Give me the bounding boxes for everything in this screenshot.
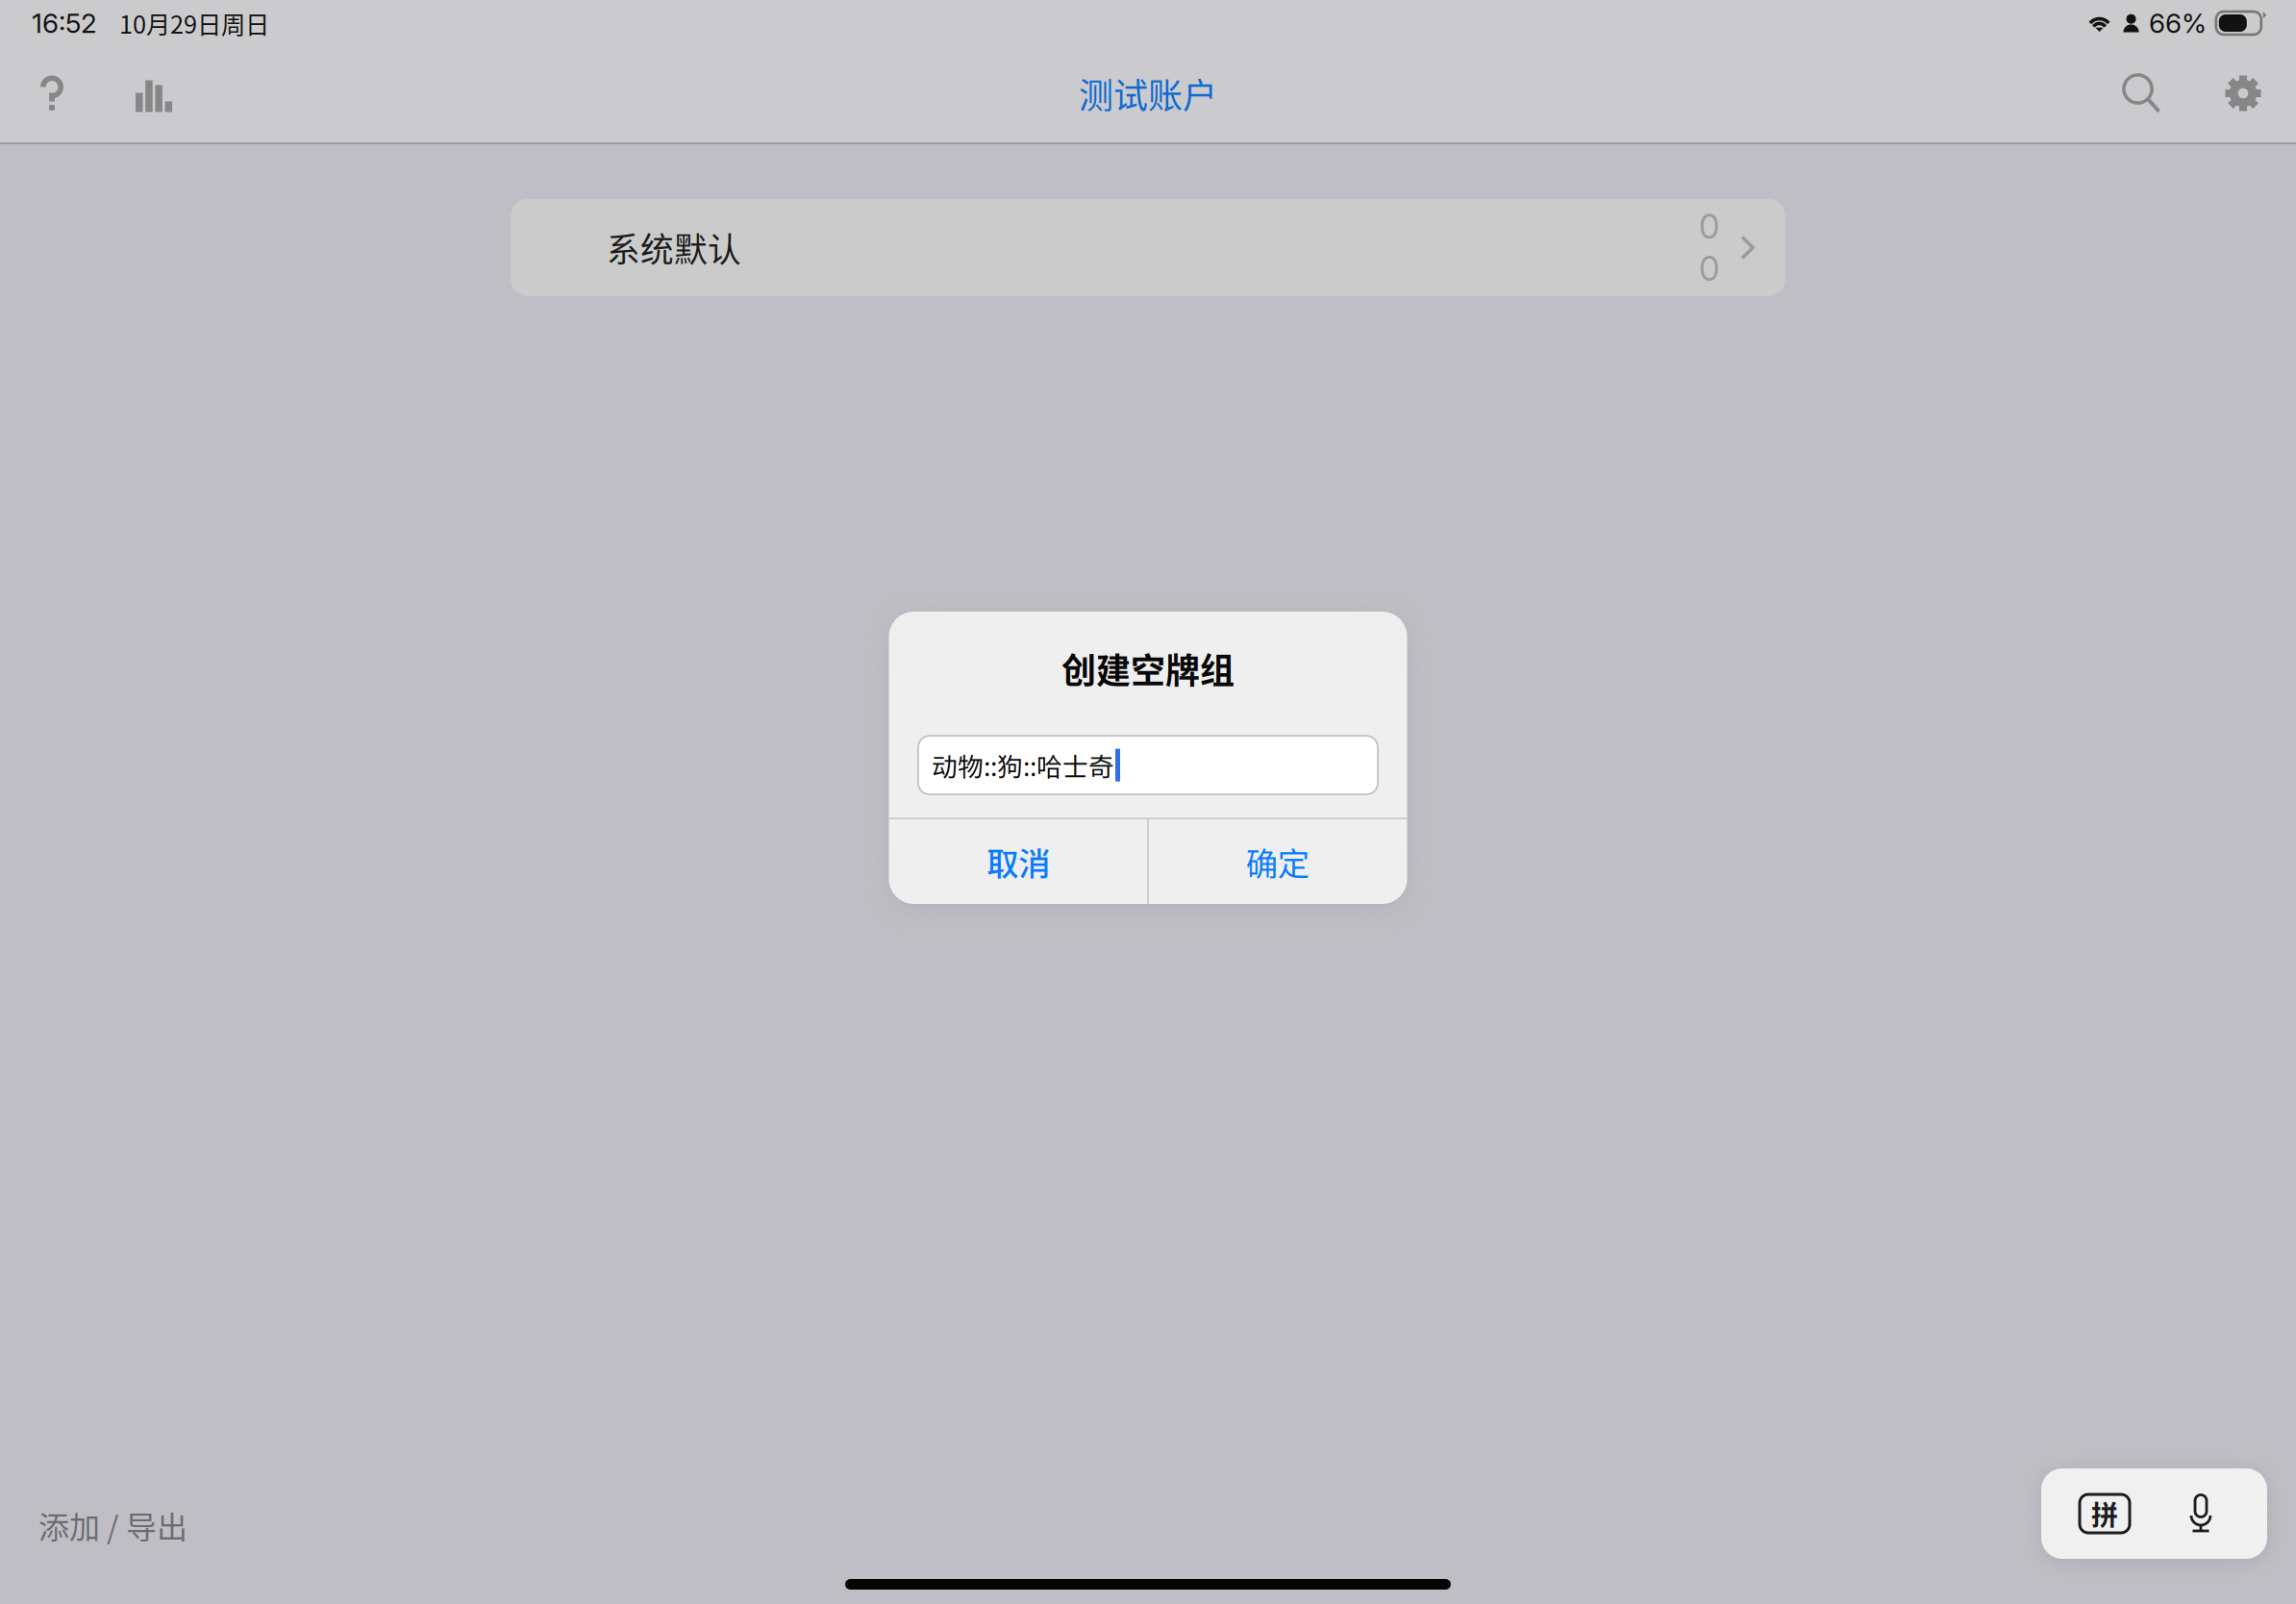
button[interactable]: 设置 bbox=[2211, 62, 2275, 125]
staticText: 取消 bbox=[987, 838, 1050, 885]
button[interactable]: 系统默认 bbox=[511, 199, 1785, 296]
staticText: 0 bbox=[1699, 249, 1719, 289]
staticText: 测试账户 bbox=[1079, 68, 1217, 118]
button[interactable]: 添加 / 导出 bbox=[38, 1457, 187, 1570]
button[interactable]: 语音输入 bbox=[2188, 1495, 2213, 1532]
button[interactable]: 统计 bbox=[122, 62, 186, 125]
staticText: 拼 bbox=[2091, 1494, 2118, 1533]
staticText: 10月29日周日 bbox=[119, 5, 269, 41]
button[interactable]: 取消 bbox=[890, 819, 1147, 904]
staticText: 66% bbox=[2149, 7, 2207, 39]
button[interactable]: 确定 bbox=[1149, 819, 1406, 904]
staticText: 系统默认 bbox=[607, 223, 741, 272]
staticText: 创建空牌组 bbox=[1061, 643, 1235, 693]
staticText: 0 bbox=[1699, 206, 1719, 247]
staticText: 添加 / 导出 bbox=[38, 1503, 187, 1547]
staticText: 动物::狗::哈士奇 bbox=[932, 747, 1114, 784]
staticText: 16:52 bbox=[32, 7, 97, 39]
button[interactable]: 搜索 bbox=[2109, 62, 2173, 125]
button[interactable]: 帮助 bbox=[20, 62, 84, 125]
staticText: 确定 bbox=[1246, 838, 1309, 885]
button[interactable]: 切换输入法 bbox=[2080, 1494, 2130, 1533]
